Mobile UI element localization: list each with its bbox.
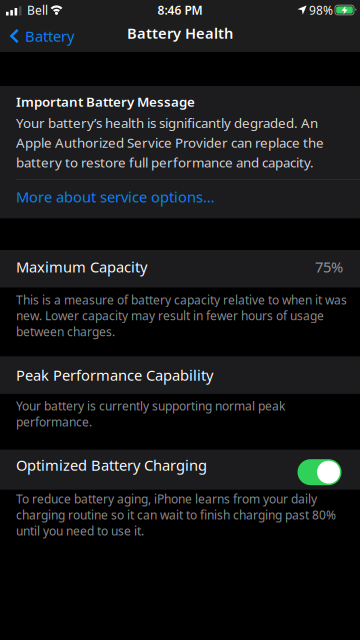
- staticText: Battery: [25, 26, 74, 46]
- staticText: Battery Health: [127, 23, 233, 43]
- button[interactable]: Optimized Battery Charging: [297, 457, 341, 483]
- staticText: Your battery is currently supporting nor…: [16, 398, 285, 414]
- staticText: 8:46 PM: [157, 2, 202, 18]
- button[interactable]: More about service options…: [0, 180, 360, 219]
- staticText: This is a measure of battery capacity re…: [16, 292, 347, 308]
- staticText: Important Battery Message: [16, 93, 195, 110]
- staticText: More about service options…: [16, 187, 215, 207]
- staticText: Apple Authorized Service Provider can re…: [16, 134, 324, 151]
- staticText: Your battery’s health is significantly d…: [16, 114, 318, 132]
- staticText: 75%: [315, 257, 343, 276]
- staticText: between charges.: [16, 324, 115, 340]
- staticText: Peak Performance Capability: [16, 365, 213, 385]
- staticText: 98%: [309, 2, 333, 18]
- staticText: charging routine so it can wait to finis…: [16, 507, 336, 523]
- staticText: To reduce battery aging, iPhone learns f…: [16, 491, 317, 507]
- staticText: performance.: [16, 414, 92, 430]
- button[interactable]: Battery: [0, 22, 74, 50]
- staticText: new. Lower capacity may result in fewer …: [16, 308, 324, 324]
- staticText: Optimized Battery Charging: [16, 455, 207, 475]
- staticText: Bell: [27, 2, 48, 18]
- staticText: until you need to use it.: [16, 523, 144, 539]
- staticText: Maximum Capacity: [16, 257, 147, 276]
- staticText: battery to restore full performance and …: [16, 153, 314, 171]
